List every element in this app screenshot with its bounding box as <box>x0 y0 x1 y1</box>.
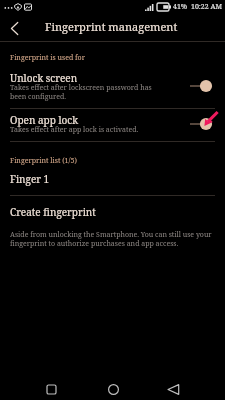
staticText: Aside from unlocking the Smartphone. You… <box>10 230 214 248</box>
staticText: 41% <box>173 2 188 12</box>
staticText: Takes effect after lockscreen password h… <box>10 83 160 101</box>
staticText: 10:22 AM <box>191 2 222 12</box>
staticText: Fingerprint list (1/5) <box>10 156 77 166</box>
button[interactable]: Open app lock <box>0 112 225 141</box>
button[interactable]: Recents <box>42 380 60 398</box>
button[interactable]: Finger 1 <box>0 168 225 195</box>
button[interactable]: Back <box>0 15 28 42</box>
staticText: Takes effect after app lock is activated… <box>10 125 139 135</box>
staticText: Unlock screen <box>10 71 78 85</box>
staticText: Fingerprint is used for <box>10 53 85 63</box>
button[interactable]: Toggle <box>190 116 218 132</box>
button[interactable]: Back <box>164 380 182 398</box>
button[interactable]: Unlock screen <box>0 66 225 108</box>
staticText: Finger 1 <box>10 172 50 186</box>
staticText: Open app lock <box>10 113 79 127</box>
button[interactable]: Home <box>104 380 122 398</box>
button[interactable]: Toggle <box>190 78 218 94</box>
button[interactable]: Create fingerprint <box>0 196 225 224</box>
staticText: Create fingerprint <box>10 205 96 219</box>
staticText: Fingerprint management <box>45 19 178 34</box>
